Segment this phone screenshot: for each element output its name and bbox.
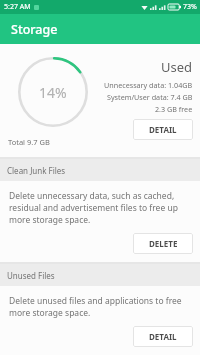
staticText: 73% xyxy=(183,2,197,12)
staticText: Used xyxy=(161,58,193,76)
staticText: Delete unused files and applications to … xyxy=(9,295,191,319)
staticText: Clean Junk Files xyxy=(7,165,66,176)
staticText: DETAIL xyxy=(149,331,177,342)
staticText: 5:27 AM xyxy=(4,2,31,12)
staticText: Total 9.7 GB xyxy=(8,137,50,147)
staticText: DETAIL xyxy=(149,124,177,135)
staticText: Storage xyxy=(11,21,58,38)
staticText: Unnecessary data: 1.04GB xyxy=(104,80,193,90)
staticText: Delete unnecessary data, such as cached,… xyxy=(9,190,191,226)
staticText: 14% xyxy=(39,83,67,102)
staticText: System/User data: 7.4 GB xyxy=(107,92,193,102)
staticText: DELETE xyxy=(149,238,178,249)
staticText: 2.3 GB free xyxy=(155,104,193,114)
button[interactable]: DETAIL xyxy=(133,326,193,347)
staticText: Unused Files xyxy=(7,270,55,281)
button[interactable]: DELETE xyxy=(133,233,193,254)
other: Storage usage 14 percent xyxy=(18,57,88,127)
button[interactable]: DETAIL xyxy=(133,119,193,140)
